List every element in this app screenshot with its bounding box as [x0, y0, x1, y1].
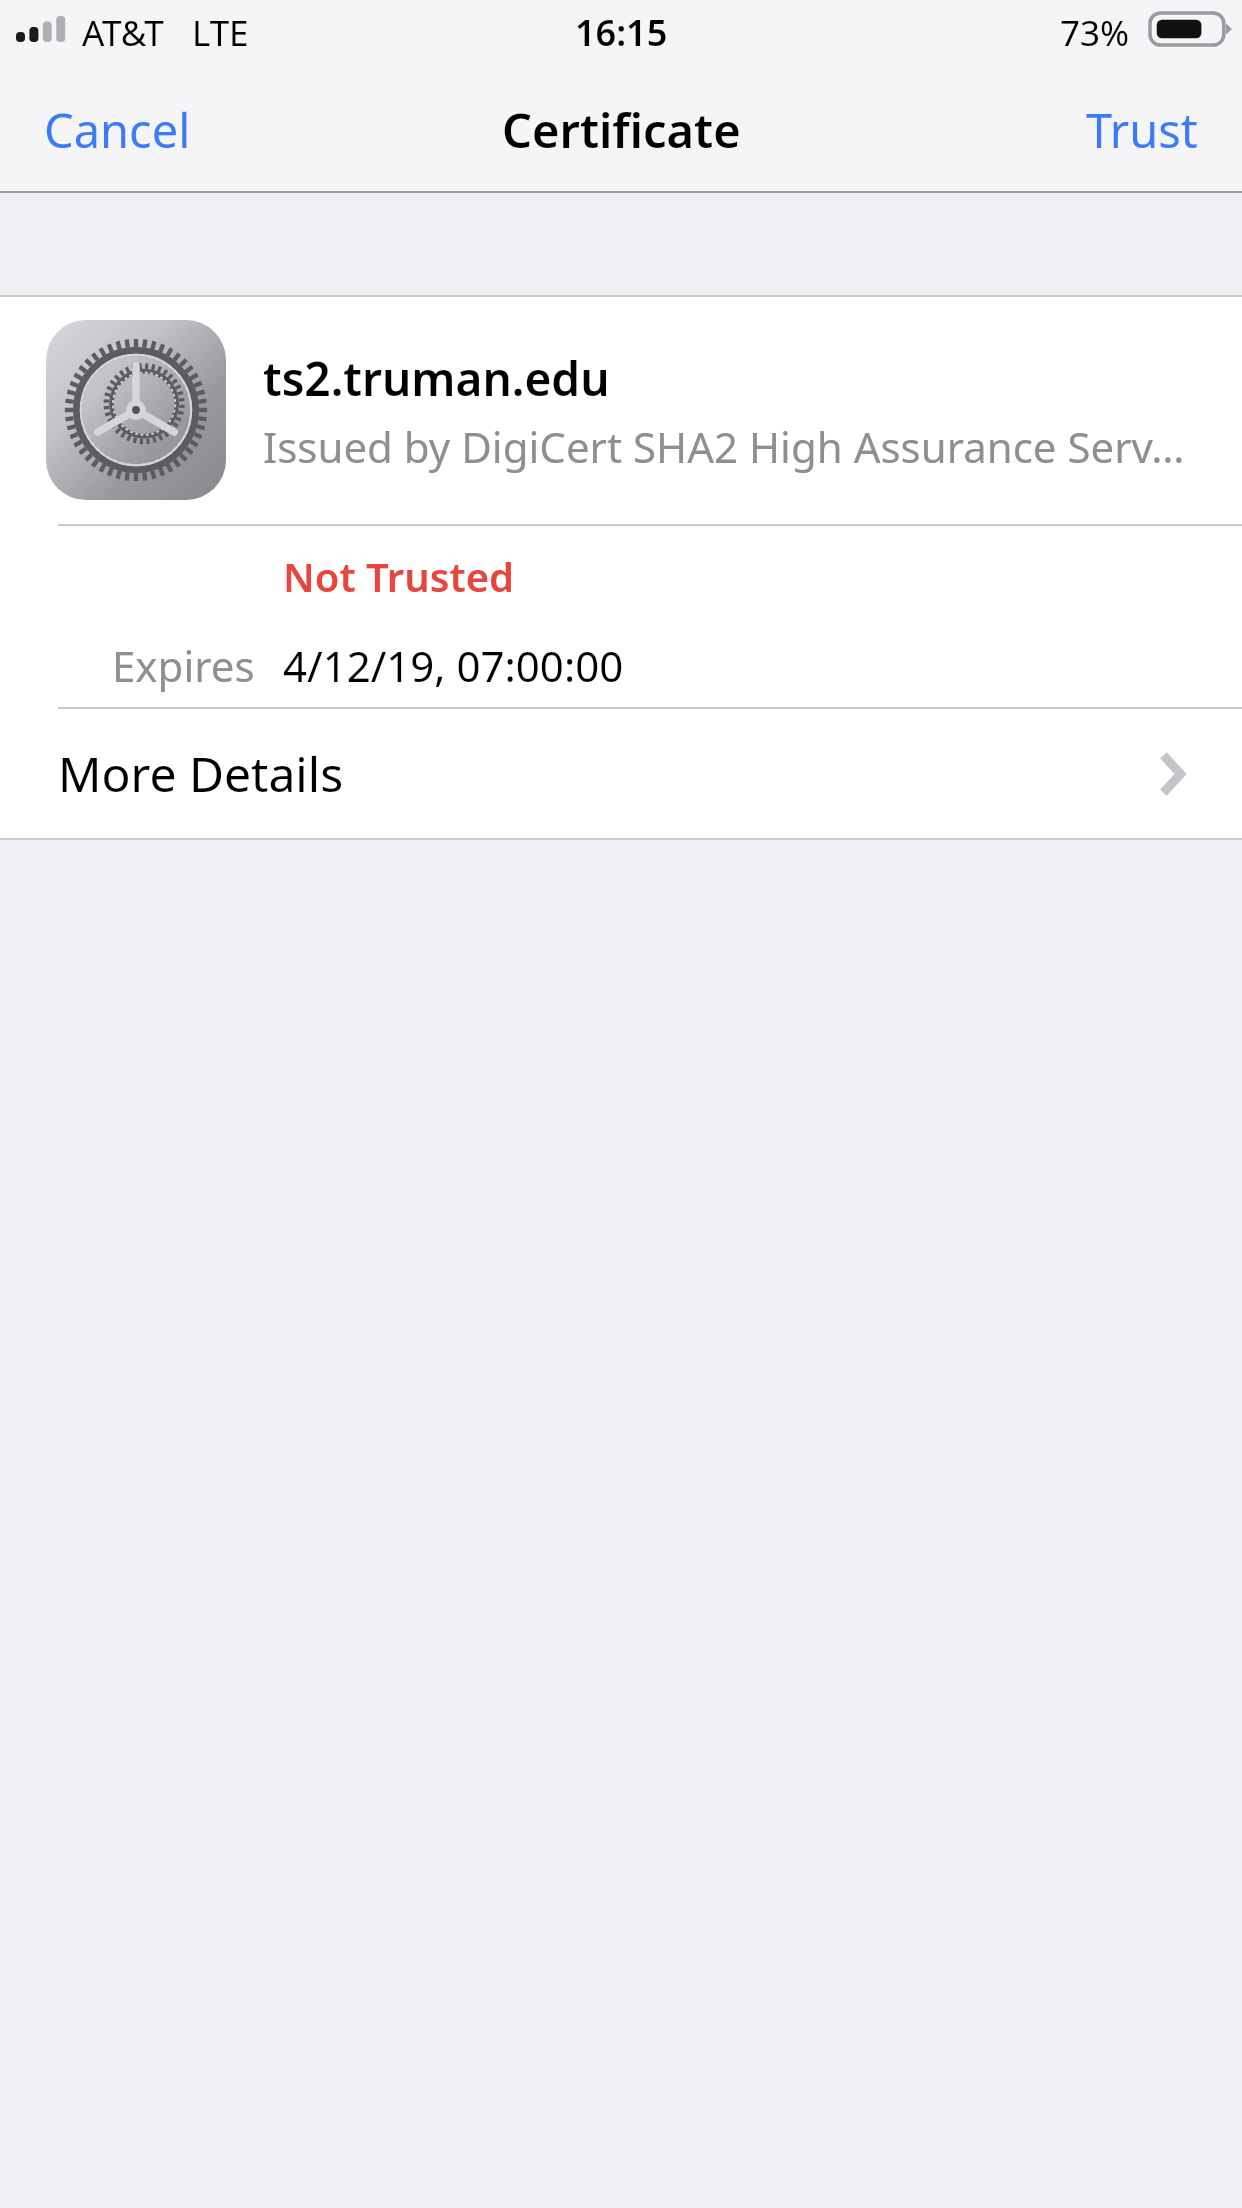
staticText: Issued by DigiCert SHA2 High Assurance S…	[263, 418, 1185, 475]
staticText: 4/12/19, 07:00:00	[283, 637, 624, 694]
staticText: Trust	[1086, 98, 1198, 162]
staticText: AT&T	[82, 9, 164, 57]
staticText: Expires	[112, 637, 255, 694]
staticText: ts2.truman.edu	[263, 347, 610, 410]
staticText: 73%	[1060, 9, 1130, 57]
staticText: Certificate	[502, 98, 741, 162]
staticText: 16:15	[575, 8, 668, 57]
button[interactable]: More Details	[0, 709, 1242, 838]
button[interactable]: Trust	[1042, 80, 1242, 180]
staticText: Cancel	[44, 98, 191, 162]
staticText: Not Trusted	[283, 549, 515, 603]
staticText: LTE	[192, 9, 249, 57]
staticText: More Details	[58, 741, 344, 806]
button[interactable]: Cancel	[0, 80, 235, 180]
other: More Details	[1158, 750, 1186, 798]
